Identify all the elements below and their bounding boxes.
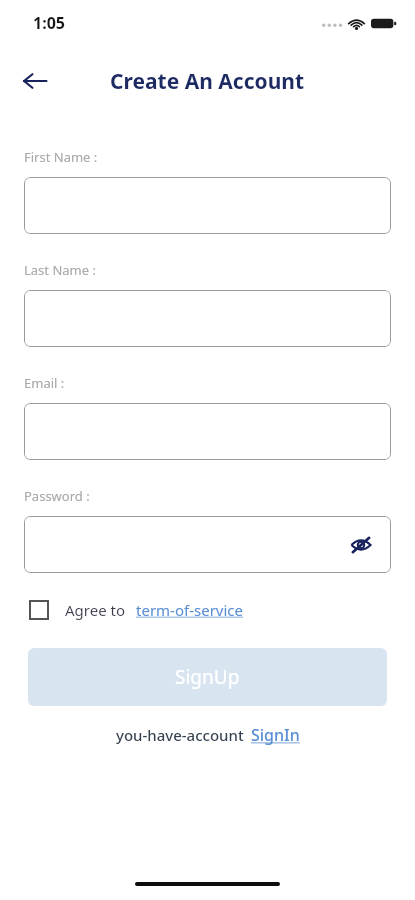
button[interactable] <box>24 290 391 347</box>
staticText: Password : <box>24 487 90 505</box>
button[interactable]: Back <box>20 66 50 96</box>
staticText: Create An Account <box>110 67 305 96</box>
button[interactable]: SignIn <box>251 724 300 746</box>
staticText: Agree to <box>65 600 126 620</box>
button[interactable] <box>24 177 391 234</box>
button[interactable]: Agree to <box>24 600 243 620</box>
button[interactable]: Show password <box>345 529 377 561</box>
button[interactable]: SignUp <box>28 648 387 706</box>
staticText: Email : <box>24 374 65 392</box>
staticText: SignUp <box>175 664 240 690</box>
button[interactable]: Show password <box>24 516 391 573</box>
staticText: 1:05 <box>33 12 65 34</box>
staticText: you-have-account <box>116 725 244 745</box>
staticText: Last Name : <box>24 261 96 279</box>
button[interactable]: term-of-service <box>136 600 243 620</box>
staticText: First Name : <box>24 148 98 166</box>
button[interactable] <box>24 403 391 460</box>
